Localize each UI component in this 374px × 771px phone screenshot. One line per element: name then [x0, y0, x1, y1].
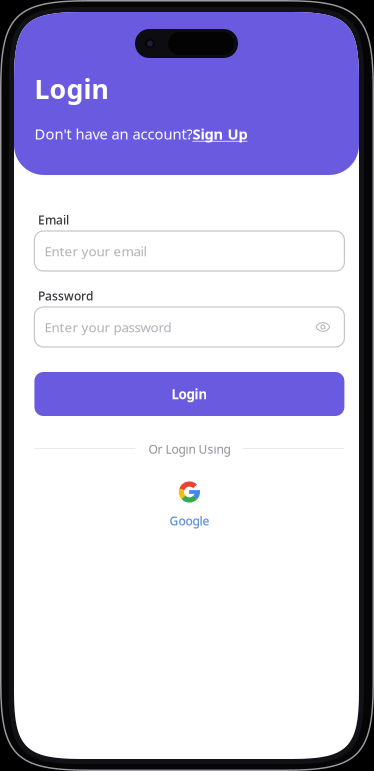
- staticText: Login: [171, 385, 207, 403]
- button[interactable]: Login: [34, 372, 344, 416]
- button[interactable]: Google: [169, 481, 209, 529]
- button[interactable]: Enter your password: [34, 307, 344, 347]
- staticText: Sign Up: [192, 124, 247, 143]
- staticText: Google: [169, 513, 209, 529]
- button[interactable]: Sign Up: [192, 124, 247, 143]
- button[interactable]: Enter your email: [34, 231, 344, 271]
- staticText: Don't have an account?: [34, 124, 192, 143]
- staticText: Login: [34, 71, 108, 106]
- staticText: Email: [38, 212, 69, 228]
- staticText: Password: [38, 288, 93, 304]
- staticText: Or Login Using: [148, 441, 230, 457]
- staticText: Enter your password: [44, 318, 171, 336]
- staticText: Enter your email: [44, 242, 146, 260]
